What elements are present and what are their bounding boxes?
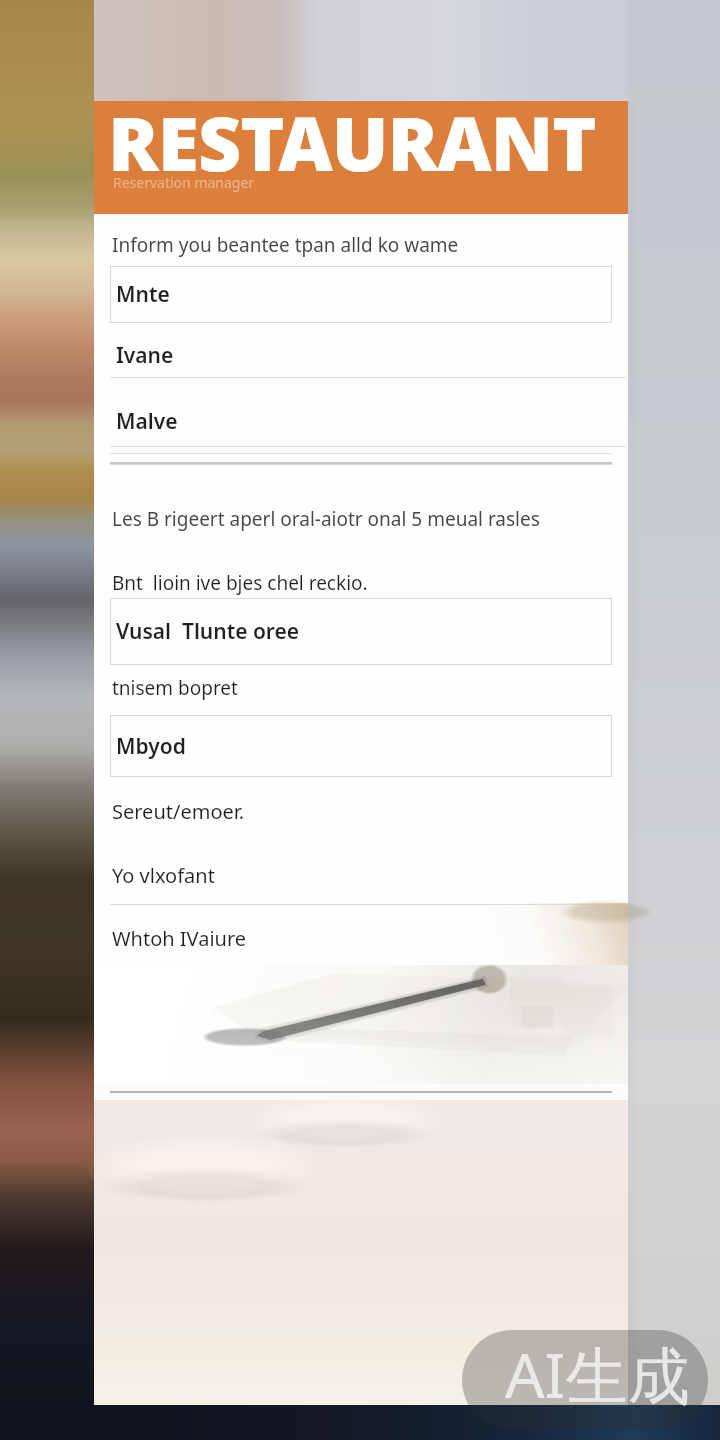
staticText: Inform you beantee tpan alld ko wame <box>112 232 459 258</box>
staticText: RESTAURANT <box>108 91 596 193</box>
staticText: tnisem bopret <box>112 675 238 701</box>
staticText: Yo vlxofant <box>112 862 215 889</box>
staticText: Malve <box>116 407 178 436</box>
staticText: Reservation manager <box>113 173 255 192</box>
button[interactable]: Malve <box>110 395 626 447</box>
button[interactable]: Mbyod <box>110 715 612 777</box>
button[interactable]: Vusal Tlunte oree <box>110 598 612 665</box>
staticText: Whtoh IVaiure <box>112 925 247 952</box>
button[interactable]: Ivane <box>110 333 626 378</box>
staticText: Mbyod <box>116 732 186 761</box>
staticText: Les B rigeert aperl oral-aiotr onal 5 me… <box>112 506 540 532</box>
button[interactable]: RESTAURANT <box>94 101 628 214</box>
staticText: Vusal Tlunte oree <box>116 617 300 646</box>
staticText: Mnte <box>116 280 170 309</box>
staticText: AI生成 <box>505 1332 690 1417</box>
staticText: Sereut/emoer. <box>112 798 245 825</box>
staticText: Bnt lioin ive bjes chel reckio. <box>112 570 368 596</box>
button[interactable]: Mnte <box>110 266 612 323</box>
staticText: Ivane <box>116 341 174 370</box>
